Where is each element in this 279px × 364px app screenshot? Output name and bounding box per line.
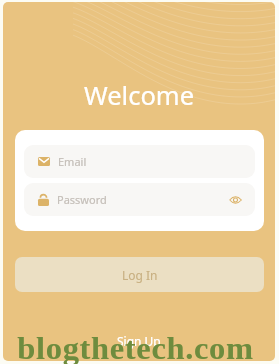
staticText: blogthetech.com <box>17 330 254 364</box>
button[interactable]: Log In <box>15 257 264 292</box>
button[interactable]: Sign Up <box>117 333 161 349</box>
button[interactable]: Show password <box>227 192 243 208</box>
staticText: Welcome <box>3 78 275 113</box>
button[interactable]: Email <box>24 145 255 178</box>
staticText: Email <box>58 154 87 169</box>
button[interactable]: Password <box>24 183 255 216</box>
staticText: Log In <box>122 267 158 283</box>
staticText: Password <box>57 192 107 207</box>
